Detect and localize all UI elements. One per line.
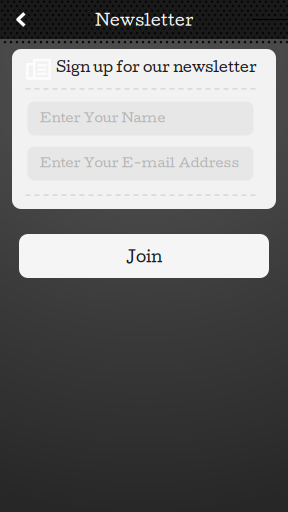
staticText: Enter Your Name: [39, 109, 165, 125]
staticText: Enter Your E-mail Address: [39, 154, 239, 170]
staticText: Newsletter: [95, 10, 193, 29]
button[interactable]: Join: [19, 234, 269, 278]
button[interactable]: Back: [0, 0, 36, 39]
button[interactable]: Enter Your E-mail Address: [27, 146, 253, 180]
staticText: Sign up for our newsletter: [56, 57, 257, 75]
staticText: Join: [126, 246, 162, 266]
button[interactable]: Enter Your Name: [27, 101, 253, 135]
